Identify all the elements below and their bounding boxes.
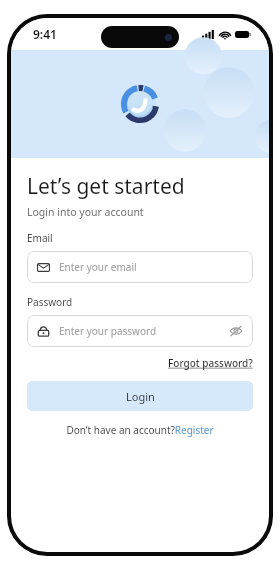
staticText: Let’s get started [27,172,185,201]
button[interactable]: Don’t have an account?Register [27,423,253,437]
staticText: Enter your password [59,324,157,338]
staticText: Login into your account [27,205,144,219]
button[interactable]: Enter your password [27,315,253,347]
staticText: Don’t have an account?Register [66,423,214,437]
button[interactable]: Enter your email [27,251,253,283]
button[interactable]: Show password [229,324,243,338]
staticText: Enter your email [59,260,137,274]
button[interactable]: Forgot password? [168,356,253,370]
staticText: Login [126,389,155,404]
staticText: 9:41 [33,26,57,42]
button[interactable]: Login [27,381,253,411]
staticText: Password [27,295,73,309]
staticText: Email [27,231,53,245]
